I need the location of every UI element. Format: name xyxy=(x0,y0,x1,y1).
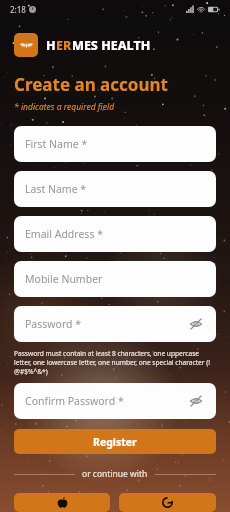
staticText: 2:18 xyxy=(10,4,26,15)
staticText: Mobile Number xyxy=(25,272,103,286)
staticText: Password must contain at least 8 charact… xyxy=(14,349,216,376)
button[interactable]: H xyxy=(14,33,151,57)
button[interactable]: Mobile Number xyxy=(14,261,216,297)
button[interactable]: Continue with Google xyxy=(119,493,216,512)
staticText: Email Address * xyxy=(25,227,103,241)
button[interactable]: Password * xyxy=(14,306,216,342)
staticText: * indicates a required field xyxy=(14,101,115,113)
button[interactable]: Toggle password visibility xyxy=(187,392,205,410)
button[interactable]: First Name * xyxy=(14,126,216,162)
staticText: or continue with xyxy=(82,468,148,480)
staticText: Password * xyxy=(25,317,82,331)
staticText: H xyxy=(46,37,56,54)
staticText: First Name * xyxy=(25,137,88,151)
button[interactable]: Register xyxy=(14,429,216,454)
staticText: Create an account xyxy=(14,73,168,96)
button[interactable]: Continue with Apple xyxy=(14,493,110,512)
button[interactable]: Last Name * xyxy=(14,171,216,207)
staticText: Register xyxy=(93,435,137,449)
staticText: MES HEALTH xyxy=(72,37,151,54)
button[interactable]: Email Address * xyxy=(14,216,216,252)
staticText: ER xyxy=(56,37,72,54)
staticText: Last Name * xyxy=(25,182,87,196)
staticText: Confirm Password * xyxy=(25,394,124,408)
button[interactable]: Confirm Password * xyxy=(14,383,216,419)
button[interactable]: Toggle password visibility xyxy=(187,315,205,333)
